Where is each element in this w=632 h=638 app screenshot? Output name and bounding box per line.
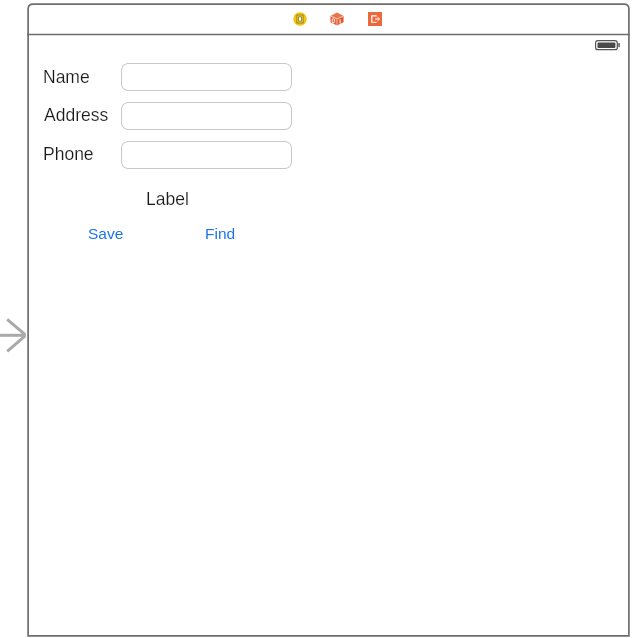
- staticText: Name: [43, 67, 90, 87]
- button[interactable]: Inspect component: [293, 12, 307, 26]
- button[interactable]: Export: [368, 12, 382, 26]
- button[interactable]: Find: [205, 225, 236, 242]
- staticText: Address: [44, 105, 109, 125]
- button[interactable]: Save: [88, 225, 124, 242]
- staticText: Phone: [43, 144, 94, 164]
- staticText: Find: [205, 225, 236, 242]
- button[interactable]: Next: [0, 317, 27, 354]
- button[interactable]: [121, 63, 292, 91]
- button[interactable]: Build module: [330, 12, 344, 26]
- staticText: Label: [146, 189, 189, 209]
- staticText: Save: [88, 225, 124, 242]
- button[interactable]: [121, 141, 292, 169]
- other: Battery full: [595, 40, 623, 54]
- button[interactable]: [121, 102, 292, 130]
